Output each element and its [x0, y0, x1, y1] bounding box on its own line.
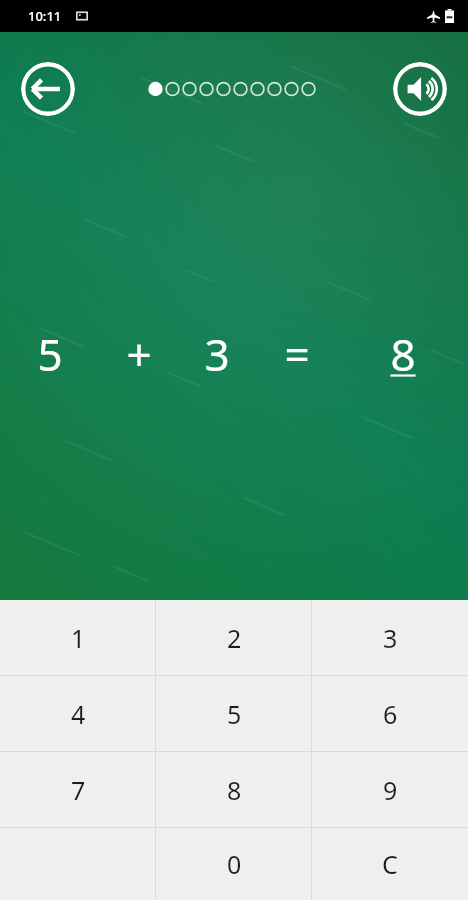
button[interactable]: C: [312, 828, 468, 900]
button[interactable]: 8: [338, 324, 468, 384]
button[interactable]: Back: [21, 62, 75, 116]
button[interactable]: 1: [0, 600, 156, 675]
button[interactable]: 8: [156, 752, 312, 827]
staticText: 3: [383, 621, 398, 655]
staticText: 1: [71, 621, 86, 655]
staticText: =: [284, 324, 310, 384]
button[interactable]: 7: [0, 752, 156, 827]
button[interactable]: 0: [156, 828, 312, 900]
staticText: 3: [204, 324, 230, 384]
staticText: 8: [227, 773, 242, 807]
button[interactable]: 6: [312, 676, 468, 751]
staticText: 2: [227, 621, 242, 655]
button[interactable]: 2: [156, 600, 312, 675]
staticText: 4: [71, 697, 86, 731]
staticText: C: [382, 847, 398, 881]
button[interactable]: Sound: [393, 62, 447, 116]
staticText: 6: [383, 697, 398, 731]
staticText: 7: [71, 773, 86, 807]
staticText: 5: [227, 697, 242, 731]
staticText: 10:11: [28, 7, 62, 25]
button[interactable]: 4: [0, 676, 156, 751]
staticText: 5: [37, 324, 63, 384]
button[interactable]: 5: [156, 676, 312, 751]
staticText: 9: [383, 773, 398, 807]
staticText: 8: [390, 324, 416, 384]
staticText: 0: [227, 847, 242, 881]
staticText: +: [126, 324, 152, 384]
button[interactable]: 3: [312, 600, 468, 675]
button[interactable]: 9: [312, 752, 468, 827]
